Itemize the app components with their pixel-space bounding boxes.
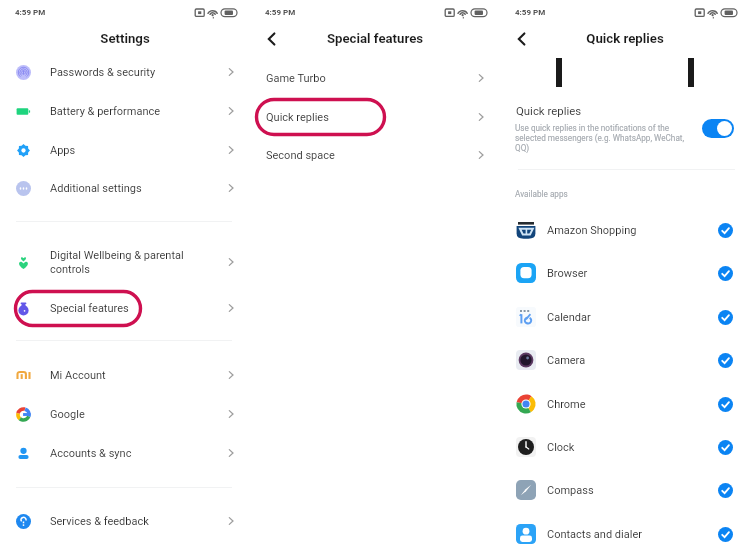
staticText: Calendar <box>547 311 718 324</box>
staticText: Settings <box>0 31 250 46</box>
button[interactable]: Services & feedback <box>0 502 250 540</box>
staticText: Clock <box>547 441 718 454</box>
button[interactable]: Google <box>0 395 250 433</box>
button[interactable]: Passwords & security <box>0 53 250 91</box>
button[interactable]: Amazon Shopping <box>500 211 750 249</box>
button[interactable]: Battery & performance <box>0 92 250 130</box>
staticText: Passwords & security <box>50 66 224 79</box>
staticText: Use quick replies in the notifications o… <box>515 123 697 153</box>
staticText: Quick replies <box>266 111 474 124</box>
button[interactable]: Digital Wellbeing & parental controls <box>0 243 250 281</box>
button[interactable]: Quick replies toggle <box>702 119 734 138</box>
button[interactable]: Additional settings <box>0 169 250 207</box>
staticText: Amazon Shopping <box>547 224 718 237</box>
staticText: 4:59 PM <box>265 8 296 17</box>
staticText: Services & feedback <box>50 515 224 528</box>
button[interactable]: Camera <box>500 341 750 379</box>
button[interactable]: Game Turbo <box>250 59 500 97</box>
staticText: Digital Wellbeing & parental controls <box>50 249 224 275</box>
staticText: Second space <box>266 149 474 162</box>
button[interactable]: Contacts and dialer <box>500 515 750 550</box>
staticText: Quick replies <box>516 104 582 117</box>
staticText: Battery & performance <box>50 105 224 118</box>
button[interactable]: Quick replies <box>250 98 500 136</box>
staticText: 4:59 PM <box>15 8 46 17</box>
staticText: Quick replies <box>500 31 750 46</box>
button[interactable]: Clock <box>500 428 750 466</box>
staticText: Additional settings <box>50 182 224 195</box>
button[interactable]: Calendar <box>500 298 750 336</box>
staticText: Special features <box>50 302 224 315</box>
button[interactable]: Mi Account <box>0 356 250 394</box>
staticText: Accounts & sync <box>50 447 224 460</box>
button[interactable]: Apps <box>0 131 250 169</box>
button[interactable]: Chrome <box>500 385 750 423</box>
staticText: Game Turbo <box>266 72 474 85</box>
staticText: Google <box>50 408 224 421</box>
staticText: Chrome <box>547 398 718 411</box>
staticText: Mi Account <box>50 369 224 382</box>
staticText: Compass <box>547 484 718 497</box>
button[interactable]: Accounts & sync <box>0 434 250 472</box>
staticText: Special features <box>250 31 500 46</box>
staticText: Apps <box>50 144 224 157</box>
button[interactable]: Special features <box>0 289 250 327</box>
staticText: 4:59 PM <box>515 8 546 17</box>
button[interactable]: Second space <box>250 136 500 174</box>
button[interactable]: Back <box>512 29 532 49</box>
button[interactable]: Browser <box>500 254 750 292</box>
staticText: Contacts and dialer <box>547 528 718 541</box>
staticText: Browser <box>547 267 718 280</box>
staticText: Available apps <box>515 189 568 199</box>
staticText: Camera <box>547 354 718 367</box>
button[interactable]: Back <box>262 29 282 49</box>
button[interactable]: Compass <box>500 471 750 509</box>
